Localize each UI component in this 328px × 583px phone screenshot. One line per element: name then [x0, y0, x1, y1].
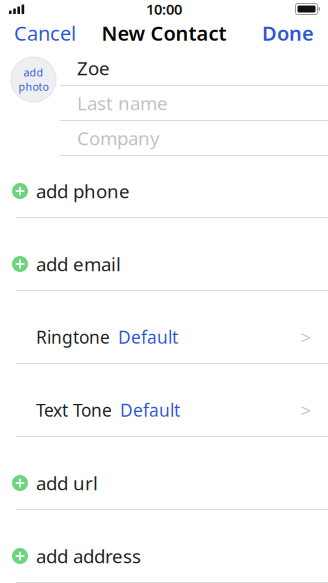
staticText: New Contact [101, 20, 226, 46]
staticText: photo [18, 79, 48, 94]
staticText: Last name [77, 91, 168, 115]
button[interactable]: add email [0, 250, 328, 278]
staticText: > [300, 325, 311, 349]
staticText: add url [36, 471, 98, 495]
button[interactable]: Done [248, 13, 328, 53]
staticText: Zoe [77, 56, 110, 80]
staticText: Default [120, 398, 180, 421]
button[interactable]: Ringtone [0, 323, 328, 351]
button[interactable]: add address [0, 542, 328, 570]
staticText: Default [118, 325, 178, 348]
staticText: Cancel [14, 20, 76, 46]
staticText: Ringtone [36, 325, 110, 348]
button[interactable]: add phone [0, 177, 328, 205]
staticText: Done [262, 20, 314, 46]
staticText: add [23, 65, 43, 79]
button[interactable]: Add photo [11, 57, 56, 102]
staticText: Company [77, 126, 160, 150]
staticText: 10:00 [146, 0, 182, 19]
staticText: add address [36, 544, 141, 568]
button[interactable]: Text Tone [0, 396, 328, 424]
button[interactable]: add url [0, 469, 328, 497]
staticText: add email [36, 252, 121, 276]
button[interactable]: Cancel [0, 13, 90, 53]
staticText: add phone [36, 179, 130, 203]
staticText: > [300, 398, 311, 422]
staticText: Text Tone [36, 398, 112, 421]
